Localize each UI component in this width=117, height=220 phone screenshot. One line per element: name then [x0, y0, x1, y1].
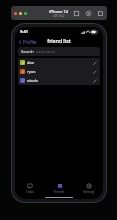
button[interactable]: Friends [45, 181, 74, 195]
button[interactable]: Search [18, 47, 100, 56]
button[interactable]: Profile [15, 38, 40, 46]
button[interactable]: Home [73, 10, 80, 17]
staticText: iPhone 14 [49, 9, 69, 14]
staticText: Settings [83, 190, 95, 194]
staticText: friend list [47, 38, 71, 45]
button[interactable]: Settings [74, 181, 103, 195]
staticText: Search [21, 49, 34, 54]
button[interactable]: Edit ryan [91, 68, 98, 75]
button[interactable]: Zoom [24, 12, 27, 15]
staticText: username [36, 49, 56, 54]
button[interactable]: Minimize [19, 12, 22, 15]
button[interactable]: Settings [85, 10, 92, 17]
button[interactable]: nicole [18, 76, 100, 85]
staticText: dan [27, 60, 35, 65]
button[interactable]: Chats [15, 181, 45, 195]
staticText: nicole [27, 78, 39, 83]
button[interactable]: ryan [18, 67, 100, 76]
button[interactable]: Screenshot [97, 10, 104, 17]
staticText: Friends [54, 190, 65, 194]
staticText: ryan [27, 69, 36, 74]
button[interactable]: dan [18, 58, 100, 67]
button[interactable]: Edit nicole [91, 77, 98, 84]
staticText: iOS 16.2 [53, 14, 65, 18]
staticText: Chats [26, 190, 34, 194]
staticText: Profile [23, 39, 37, 45]
button[interactable]: Edit dan [91, 59, 98, 66]
button[interactable]: Close [14, 12, 17, 15]
staticText: 9:41 [20, 29, 28, 34]
